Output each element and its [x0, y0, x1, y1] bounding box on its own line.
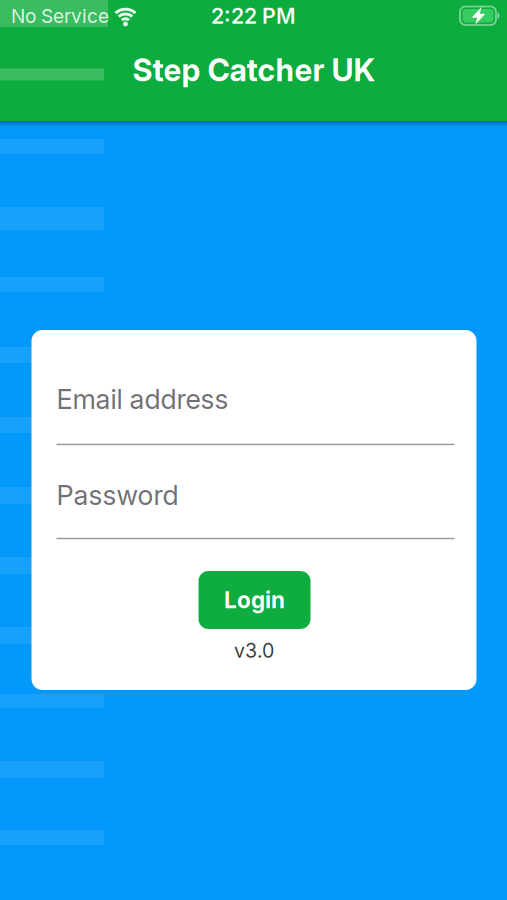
staticText: 2:22 PM	[211, 3, 296, 29]
staticText: v3.0	[234, 639, 274, 662]
textField[interactable]: Email address	[56, 383, 454, 445]
secureTextField[interactable]: Password	[56, 479, 454, 539]
button[interactable]: Login	[198, 571, 310, 629]
staticText: Step Catcher UK	[132, 51, 375, 88]
staticText: Password	[56, 479, 178, 511]
staticText: Email address	[56, 383, 228, 415]
staticText: Login	[224, 586, 285, 614]
staticText: No Service	[11, 4, 109, 28]
